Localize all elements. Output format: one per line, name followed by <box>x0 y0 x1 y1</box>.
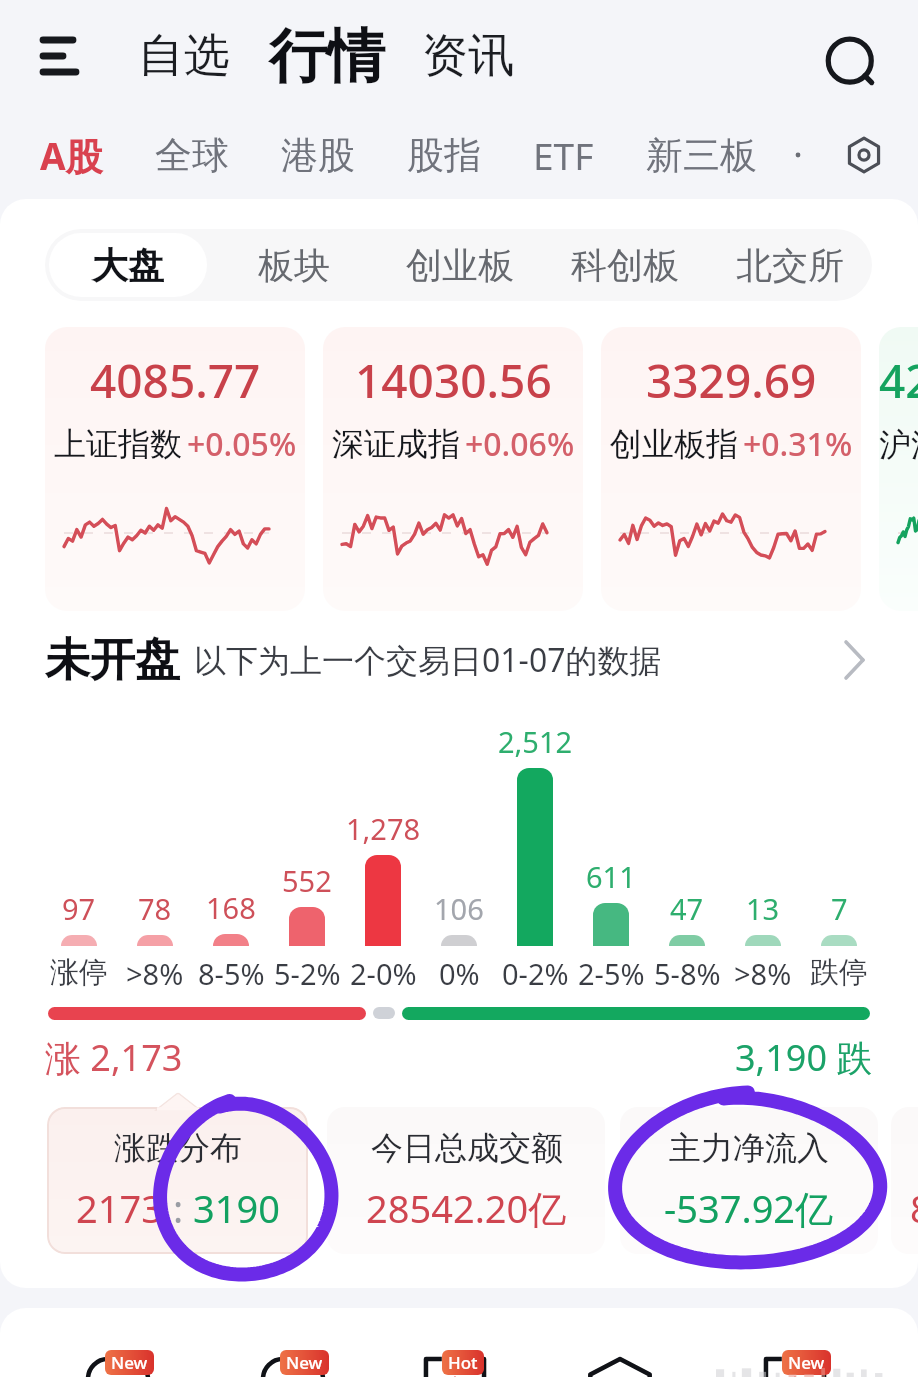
staticText: 5-8% <box>654 954 721 993</box>
staticText: 科创板 <box>571 243 679 288</box>
staticText: 自选 <box>138 27 230 85</box>
staticText: A股 <box>40 130 103 181</box>
staticText: 13 <box>746 889 780 928</box>
staticText: 北交所 <box>736 243 844 288</box>
button[interactable]: Settings <box>836 127 892 183</box>
staticText: ETF <box>533 130 594 180</box>
button[interactable]: 自选 <box>134 17 234 95</box>
staticText: New <box>111 1351 148 1374</box>
staticText: 跌停 <box>810 954 868 991</box>
staticText: 沪深300 <box>879 422 918 466</box>
button[interactable]: 股指 <box>405 120 483 191</box>
staticText: 552 <box>282 861 332 900</box>
staticText: 创业板 <box>406 243 514 288</box>
staticText: 5-2% <box>274 954 341 993</box>
staticText: 4085.77 <box>90 349 261 412</box>
staticText: 2173 <box>76 1182 163 1234</box>
button[interactable]: 港股 <box>279 120 357 191</box>
button[interactable]: 未开盘 <box>45 630 878 690</box>
staticText: 0% <box>439 954 480 993</box>
button[interactable]: 板块 <box>215 233 373 297</box>
staticText: 3,190 跌 <box>735 1033 873 1082</box>
staticText: 今日总成交额 <box>371 1128 563 1168</box>
staticText: 3329.69 <box>646 349 817 412</box>
button[interactable]: ETF <box>531 118 596 192</box>
staticText: 大盘 <box>92 243 164 288</box>
button[interactable]: 4085.77 <box>45 327 305 611</box>
staticText: +0.31% <box>743 422 853 466</box>
button[interactable]: 模拟炒股 <box>260 1356 326 1377</box>
staticText: >8% <box>734 954 792 993</box>
staticText: 涨 2,173 <box>45 1033 183 1082</box>
staticText: 以下为上一个交易日01-07的数据 <box>194 638 662 682</box>
staticText: 股指 <box>407 132 481 179</box>
staticText: 8.2亿 <box>910 1182 918 1234</box>
button[interactable]: 新三板 <box>644 120 759 191</box>
button[interactable]: 今日总成交额 <box>327 1107 605 1254</box>
button[interactable]: 科创板 <box>546 233 703 297</box>
staticText: 1,278 <box>346 809 421 848</box>
staticText: +0.06% <box>465 422 575 466</box>
staticText: +0.05% <box>187 422 297 466</box>
button[interactable]: 4285.126 <box>879 327 918 611</box>
button[interactable]: Menu <box>30 24 94 88</box>
staticText: 168 <box>206 888 256 927</box>
button[interactable]: 涨跌分布 <box>47 1107 308 1254</box>
staticText: 2-0% <box>350 954 417 993</box>
staticText: 47 <box>670 889 704 928</box>
staticText: New <box>788 1351 825 1374</box>
staticText: 0-2% <box>502 954 569 993</box>
staticText: 2-5% <box>578 954 645 993</box>
staticText: 78 <box>138 889 172 928</box>
staticText: 2,512 <box>498 722 573 761</box>
button[interactable]: AI选股 <box>422 1356 488 1377</box>
staticText: 行情 <box>269 20 385 93</box>
button[interactable]: 资讯 <box>418 17 518 95</box>
staticText: 板块 <box>258 243 330 288</box>
staticText: Hot <box>448 1351 478 1374</box>
staticText: 涨停 <box>50 954 108 991</box>
button[interactable]: 行情 <box>265 10 389 103</box>
button[interactable]: 微信 <box>762 1356 828 1377</box>
staticText: 深证成指 <box>332 424 460 464</box>
staticText: : <box>163 1182 193 1234</box>
staticText: >8% <box>126 954 184 993</box>
staticText: 主力净流入 <box>669 1128 829 1168</box>
button[interactable]: A股 <box>38 118 105 193</box>
staticText: 7 <box>831 889 848 928</box>
staticText: 涨跌分布 <box>114 1128 242 1168</box>
staticText: 新三板 <box>646 132 757 179</box>
button[interactable]: 3329.69 <box>601 327 861 611</box>
button[interactable]: 股票开户 <box>85 1356 151 1377</box>
button[interactable]: 主力净流入 <box>620 1107 878 1254</box>
staticText: 8-5% <box>198 954 265 993</box>
staticText: 14030.56 <box>355 349 552 412</box>
button[interactable]: 全球 <box>153 120 231 191</box>
button[interactable]: 沪深 <box>891 1107 918 1254</box>
staticText: 611 <box>586 857 636 896</box>
staticText: 创业板指 <box>610 424 738 464</box>
staticText: 全球 <box>155 132 229 179</box>
staticText: -537.92亿 <box>664 1182 834 1234</box>
button[interactable]: 首页 <box>587 1356 653 1377</box>
staticText: 资讯 <box>422 27 514 85</box>
staticText: 106 <box>434 889 484 928</box>
staticText: 港股 <box>281 132 355 179</box>
button[interactable]: Search <box>816 28 888 100</box>
button[interactable]: 北交所 <box>711 233 868 297</box>
button[interactable]: 14030.56 <box>323 327 583 611</box>
staticText: 97 <box>62 889 96 928</box>
staticText: New <box>286 1351 323 1374</box>
staticText: 上证指数 <box>54 424 182 464</box>
button[interactable]: 大盘 <box>49 233 207 297</box>
staticText: 3190 <box>193 1182 280 1234</box>
staticText: 未开盘 <box>45 632 180 689</box>
button[interactable]: 创业板 <box>381 233 538 297</box>
staticText: 28542.20亿 <box>366 1182 567 1234</box>
staticText: 4285.126 <box>879 349 918 412</box>
